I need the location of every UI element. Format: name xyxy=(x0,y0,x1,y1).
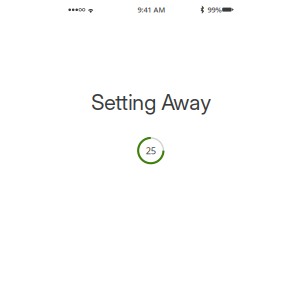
staticText: 25 xyxy=(146,144,156,157)
staticText: Setting Away xyxy=(91,89,211,115)
staticText: 9:41 AM xyxy=(137,5,165,15)
staticText: 99% xyxy=(208,5,222,15)
